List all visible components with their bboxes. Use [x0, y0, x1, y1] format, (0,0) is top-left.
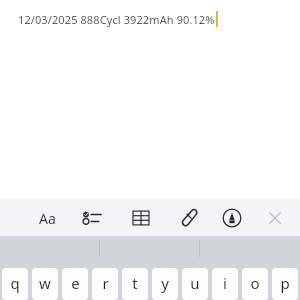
staticText: p	[280, 273, 290, 293]
button[interactable]: Attach	[172, 202, 204, 234]
button[interactable]: p	[272, 268, 298, 300]
button[interactable]: o	[242, 268, 268, 300]
staticText: e	[71, 273, 80, 293]
staticText: w	[39, 273, 51, 293]
button[interactable]: w	[32, 268, 58, 300]
button[interactable]: y	[152, 268, 178, 300]
button[interactable]: i	[212, 268, 238, 300]
button[interactable]: Table	[125, 202, 157, 234]
staticText: i	[223, 273, 227, 293]
staticText: 12/03/2025 888Cycl 3922mAh 90.12%	[18, 12, 215, 27]
button[interactable]: e	[62, 268, 88, 300]
staticText: r	[102, 273, 109, 293]
staticText: y	[161, 273, 169, 293]
button[interactable]: u	[182, 268, 208, 300]
button[interactable]: r	[92, 268, 118, 300]
button[interactable]: Checklist	[76, 202, 108, 234]
staticText: Aa	[39, 209, 56, 228]
button[interactable]: Text format	[31, 202, 63, 234]
button[interactable]: Close	[259, 202, 291, 234]
button[interactable]: Markup	[216, 202, 248, 234]
staticText: o	[250, 273, 260, 293]
button[interactable]: t	[122, 268, 148, 300]
button[interactable]: q	[2, 268, 28, 300]
staticText: t	[132, 273, 138, 293]
staticText: q	[10, 273, 20, 293]
staticText: u	[190, 273, 200, 293]
